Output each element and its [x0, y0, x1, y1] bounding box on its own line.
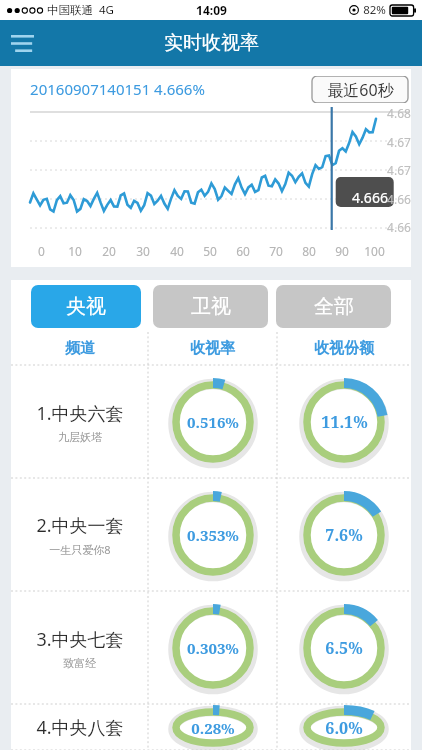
button[interactable]: 全部 [276, 285, 391, 328]
button[interactable]: 1.中央六套 [11, 366, 411, 478]
staticText: 中国联通 [47, 3, 93, 17]
staticText: 4.66 [387, 191, 411, 207]
button[interactable]: Menu [6, 27, 38, 59]
staticText: 收视率 [190, 339, 235, 358]
staticText: 20160907140151 4.666% [30, 79, 205, 99]
staticText: 九层妖塔 [58, 430, 102, 444]
staticText: 一生只爱你8 [49, 542, 111, 557]
button[interactable]: 3.中央七套 [11, 592, 411, 704]
button[interactable]: 最近60秒 [311, 76, 409, 103]
staticText: 0.303% [187, 638, 239, 658]
staticText: 10 [68, 243, 82, 259]
staticText: 6.5% [325, 637, 363, 659]
staticText: 11.1% [321, 411, 368, 433]
staticText: 4.66 [387, 219, 411, 235]
button[interactable]: 卫视 [153, 285, 268, 328]
staticText: 100 [364, 243, 385, 259]
staticText: 40 [170, 243, 184, 259]
staticText: 90 [335, 243, 349, 259]
staticText: 最近60秒 [327, 79, 394, 101]
staticText: 0 [38, 243, 45, 259]
staticText: 3.中央七套 [36, 627, 124, 652]
staticText: 4.中央八套 [36, 715, 124, 740]
staticText: 4.67 [387, 162, 411, 178]
staticText: 7.6% [325, 524, 363, 546]
staticText: 频道 [65, 339, 95, 358]
staticText: 2.中央一套 [36, 513, 124, 538]
staticText: 30 [136, 243, 150, 259]
staticText: 6.0% [325, 717, 363, 739]
staticText: 50 [203, 243, 217, 259]
staticText: 0.28% [191, 718, 235, 738]
staticText: 致富经 [63, 656, 96, 670]
staticText: 1.中央六套 [36, 401, 124, 426]
staticText: 80 [302, 243, 316, 259]
staticText: 收视份额 [314, 339, 374, 358]
staticText: 82% [363, 2, 386, 18]
staticText: 4.666 [352, 188, 388, 207]
staticText: 4.68 [387, 105, 411, 121]
staticText: 60 [236, 243, 250, 259]
staticText: 0.353% [187, 525, 239, 545]
staticText: 央视 [66, 294, 106, 319]
staticText: 全部 [314, 294, 354, 319]
staticText: 实时收视率 [164, 31, 259, 55]
staticText: 4.67 [387, 134, 411, 150]
staticText: 70 [269, 243, 283, 259]
staticText: 卫视 [191, 294, 231, 319]
staticText: 14:09 [196, 2, 227, 18]
button[interactable]: 央视 [31, 285, 141, 328]
button[interactable]: 4.中央八套 [11, 705, 411, 750]
staticText: 0.516% [187, 412, 239, 432]
staticText: 20 [102, 243, 116, 259]
button[interactable]: 2.中央一套 [11, 479, 411, 591]
staticText: 4G [99, 2, 114, 18]
